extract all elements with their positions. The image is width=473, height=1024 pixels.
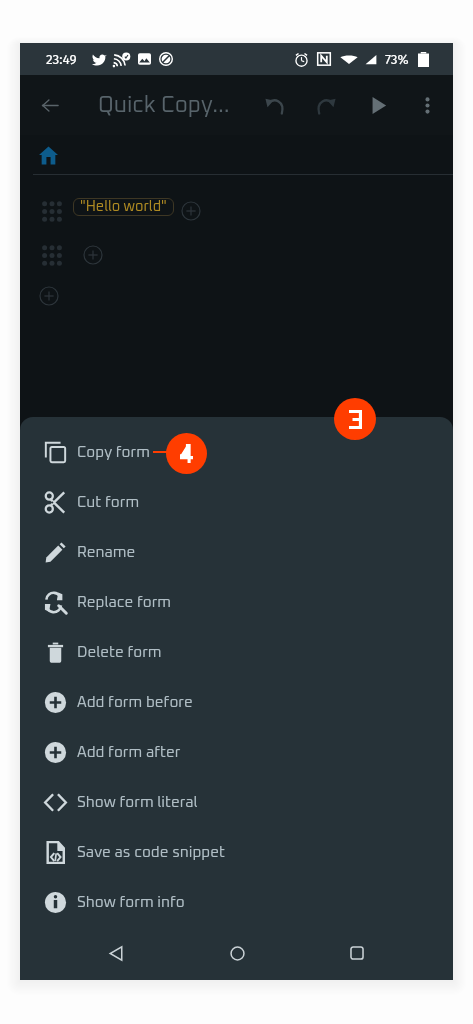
staticText: Show form info bbox=[77, 895, 185, 910]
button[interactable]: Rename bbox=[20, 527, 453, 577]
staticText: Add form before bbox=[77, 695, 193, 710]
button[interactable]: Back bbox=[27, 83, 72, 128]
staticText: Delete form bbox=[77, 645, 162, 660]
button[interactable]: More options bbox=[405, 83, 449, 127]
button[interactable]: Undo bbox=[253, 83, 297, 127]
staticText: Quick Copy... bbox=[98, 94, 230, 116]
button[interactable]: Recents bbox=[333, 929, 381, 977]
staticText: Rename bbox=[77, 545, 136, 560]
staticText: 23:49 bbox=[46, 51, 77, 67]
staticText: Show form literal bbox=[77, 795, 198, 810]
staticText: Copy form bbox=[77, 445, 150, 460]
staticText: "Hello world" bbox=[80, 200, 167, 214]
staticText: Cut form bbox=[77, 495, 140, 510]
button[interactable]: Redo bbox=[303, 83, 347, 127]
button[interactable]: Show form literal bbox=[20, 777, 453, 827]
staticText: Save as code snippet bbox=[77, 845, 226, 860]
button[interactable]: Home bbox=[213, 929, 261, 977]
button[interactable]: Run bbox=[356, 83, 400, 127]
button[interactable]: Save as code snippet bbox=[20, 827, 453, 877]
button[interactable]: Back bbox=[92, 929, 140, 977]
button[interactable]: Copy form bbox=[20, 427, 453, 477]
button[interactable]: Show form info bbox=[20, 877, 453, 927]
staticText: Replace form bbox=[77, 595, 172, 610]
button[interactable]: Add form after bbox=[20, 727, 453, 777]
button[interactable]: Replace form bbox=[20, 577, 453, 627]
button[interactable]: Add form before bbox=[20, 677, 453, 727]
button[interactable]: Home bbox=[33, 140, 63, 170]
staticText: 73% bbox=[385, 51, 409, 67]
button[interactable]: Delete form bbox=[20, 627, 453, 677]
staticText: Add form after bbox=[77, 745, 181, 760]
button[interactable]: Cut form bbox=[20, 477, 453, 527]
